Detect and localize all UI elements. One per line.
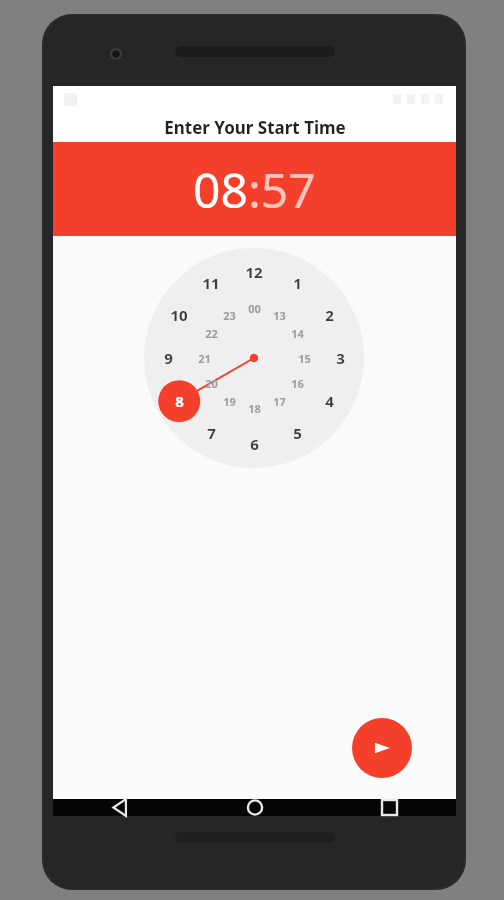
button[interactable]: Enter Your Start Time <box>164 116 346 139</box>
staticText: 16 <box>291 376 304 391</box>
button[interactable]: Home <box>188 799 322 816</box>
staticText: 22 <box>205 326 218 341</box>
button[interactable]: Next <box>352 718 412 778</box>
staticText: 20 <box>205 376 218 391</box>
staticText: 9 <box>164 348 173 368</box>
button[interactable]: Recent apps <box>322 800 456 815</box>
staticText: 21 <box>198 351 211 366</box>
button[interactable]: 1 <box>144 248 364 468</box>
staticText: 10 <box>170 305 188 325</box>
button[interactable]: Back <box>53 799 188 816</box>
staticText: 3 <box>336 348 345 368</box>
staticText: 7 <box>207 423 216 443</box>
staticText: 18 <box>248 401 261 416</box>
staticText: 8 <box>175 391 184 411</box>
staticText: 6 <box>250 434 259 454</box>
staticText: 15 <box>298 351 311 366</box>
staticText: 2 <box>325 305 334 325</box>
staticText: 13 <box>273 308 286 323</box>
button[interactable]: :57 <box>248 157 316 222</box>
staticText: 11 <box>202 273 220 293</box>
staticText: 4 <box>325 391 334 411</box>
staticText: 5 <box>293 423 302 443</box>
staticText: 23 <box>223 308 236 323</box>
button[interactable]: 08 <box>193 157 248 222</box>
staticText: 14 <box>291 326 304 341</box>
staticText: 17 <box>273 394 286 409</box>
staticText: 19 <box>223 394 236 409</box>
staticText: 00 <box>248 301 261 316</box>
staticText: 1 <box>293 273 302 293</box>
staticText: 12 <box>245 262 263 282</box>
